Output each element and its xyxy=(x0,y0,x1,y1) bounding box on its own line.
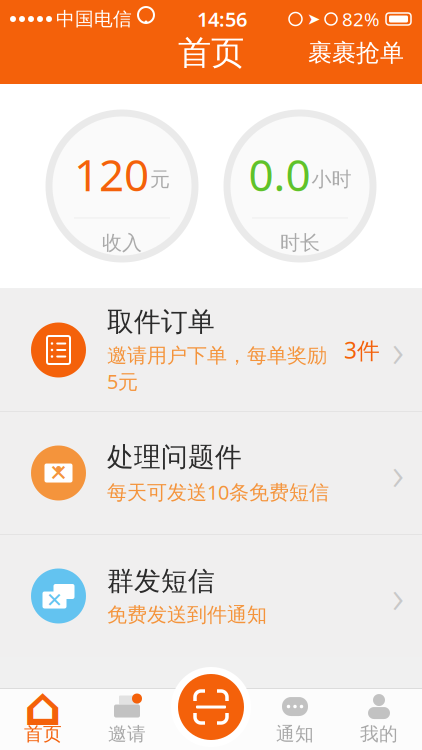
staticText: 邀请 xyxy=(108,722,146,745)
staticText: 3件 xyxy=(344,335,380,365)
staticText: › xyxy=(392,443,404,503)
staticText: 中国电信 xyxy=(56,7,132,30)
staticText: 首页 xyxy=(24,722,62,745)
button[interactable]: ✕ xyxy=(0,412,422,535)
staticText: ⌂ xyxy=(24,676,62,737)
staticText: 裹裹抢单 xyxy=(308,38,404,68)
button[interactable]: 邀请 xyxy=(85,688,169,750)
staticText: 免费发送到件通知 xyxy=(107,603,267,627)
staticText: 处理问题件 xyxy=(107,441,242,474)
staticText: 120 xyxy=(74,145,149,203)
button[interactable]: 扫一扫 xyxy=(170,666,252,748)
staticText: 14:56 xyxy=(197,6,247,32)
button[interactable]: 裹裹抢单 xyxy=(296,32,416,74)
staticText: 我的 xyxy=(360,722,398,745)
button[interactable]: ✕ xyxy=(0,535,422,657)
staticText: ✕ xyxy=(49,460,68,486)
button[interactable]: ⌂ xyxy=(1,688,85,750)
staticText: › xyxy=(392,566,404,626)
button[interactable]: 通知 xyxy=(253,688,337,750)
staticText: 首页 xyxy=(178,32,244,73)
staticText: › xyxy=(392,320,404,380)
button[interactable]: 我的 xyxy=(337,688,421,750)
button[interactable]: 取件订单 xyxy=(0,289,422,412)
staticText: 群发短信 xyxy=(107,565,215,598)
staticText: 通知 xyxy=(276,722,314,745)
staticText: 收入 xyxy=(102,230,142,255)
staticText: ➤ xyxy=(307,10,320,28)
staticText: 时长 xyxy=(280,230,320,255)
staticText: 小时 xyxy=(311,167,351,191)
staticText: 每天可发送10条免费短信 xyxy=(107,479,329,505)
staticText: ✕ xyxy=(46,589,63,611)
staticText: 0.0 xyxy=(248,145,310,203)
staticText: 取件订单 xyxy=(107,306,215,338)
staticText: 元 xyxy=(150,167,170,191)
staticText: 82% xyxy=(342,7,380,31)
staticText: 邀请用户下单，每单奖励5元 xyxy=(107,343,327,394)
